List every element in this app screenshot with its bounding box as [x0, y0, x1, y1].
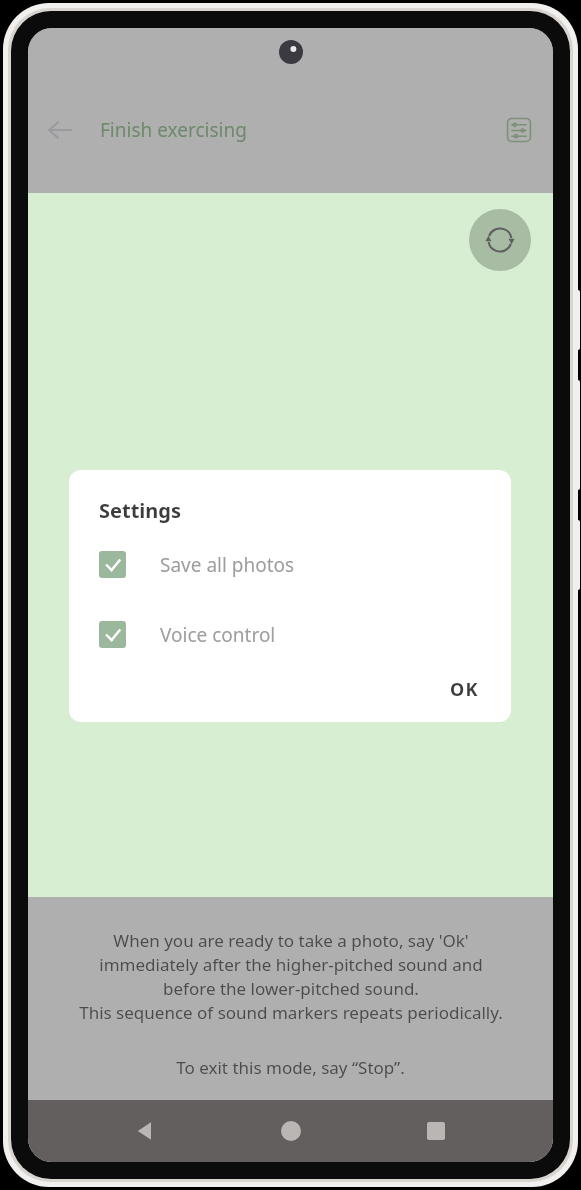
staticText: When you are ready to take a photo, say … — [79, 929, 503, 1024]
button[interactable]: OK — [440, 671, 489, 708]
button[interactable]: Back — [36, 106, 84, 154]
button[interactable]: Voice control — [69, 617, 511, 652]
button[interactable]: Switch camera — [469, 209, 531, 271]
staticText: Finish exercising — [100, 117, 247, 143]
button[interactable]: Recent apps — [407, 1102, 465, 1160]
staticText: Settings — [99, 497, 181, 524]
staticText: Voice control — [160, 622, 276, 648]
button[interactable]: Home — [262, 1102, 320, 1160]
staticText: To exit this mode, say “Stop”. — [176, 1056, 405, 1079]
button[interactable]: Save all photos — [69, 547, 511, 582]
staticText: OK — [450, 677, 479, 702]
staticText: Save all photos — [160, 552, 295, 578]
button[interactable]: Back — [116, 1102, 174, 1160]
button[interactable]: Settings — [497, 108, 541, 152]
